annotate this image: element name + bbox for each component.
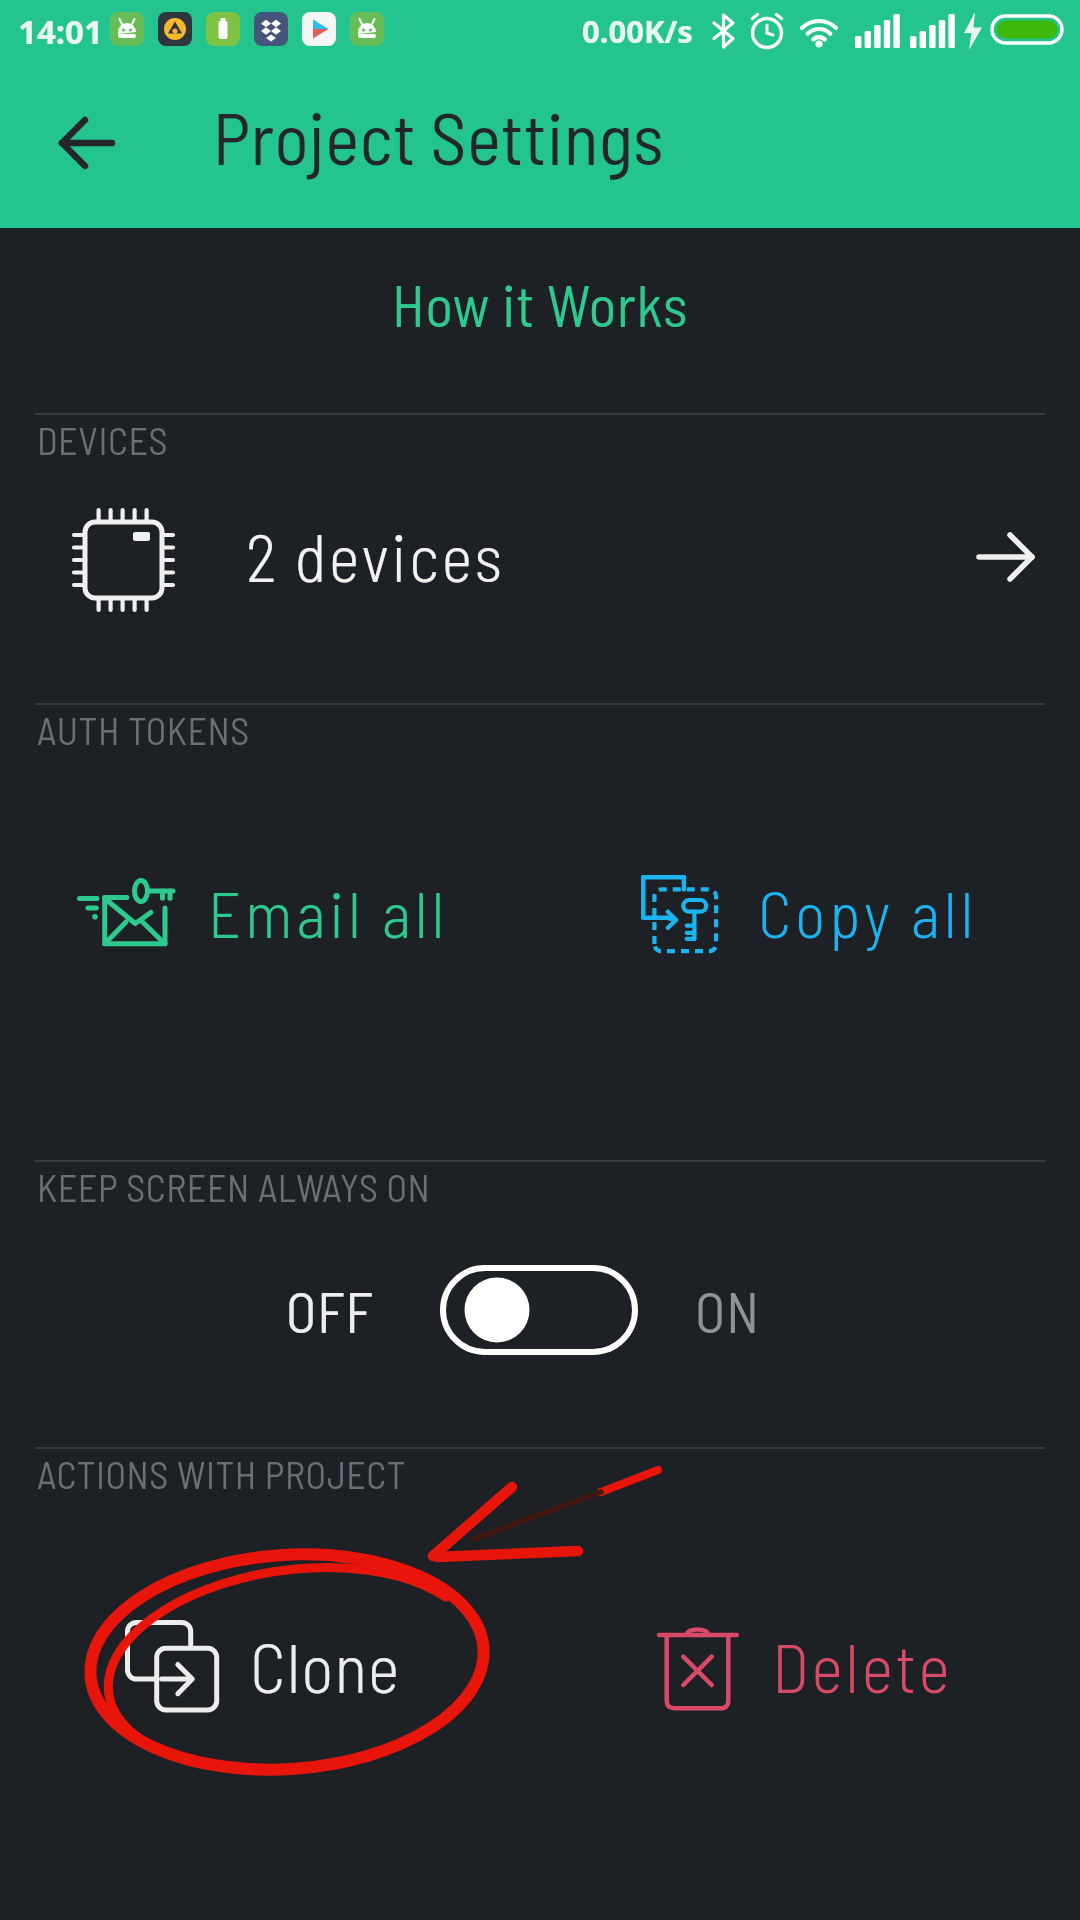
staticText: ACTIONS WITH PROJECT xyxy=(37,1451,406,1493)
staticText: Email all xyxy=(208,874,449,951)
button[interactable] xyxy=(300,265,780,343)
button[interactable]: Email all xyxy=(55,845,475,980)
staticText: DEVICES xyxy=(37,417,169,459)
staticText: Delete xyxy=(772,1625,953,1707)
staticText: OFF xyxy=(286,1277,374,1344)
staticText: How it Works xyxy=(392,269,689,339)
button[interactable] xyxy=(40,98,140,188)
button[interactable]: Delete xyxy=(638,1598,988,1733)
button[interactable]: Clone xyxy=(108,1598,438,1733)
staticText: 0.00K/s xyxy=(582,10,693,52)
staticText: 14:01 xyxy=(18,9,103,54)
staticText: Copy all xyxy=(758,874,978,951)
button[interactable]: OFF xyxy=(270,1248,790,1373)
staticText: AUTH TOKENS xyxy=(37,707,250,749)
button[interactable]: 2 devices xyxy=(30,480,1050,630)
staticText: 2 devices xyxy=(246,516,505,595)
staticText: ON xyxy=(695,1277,760,1344)
staticText: Clone xyxy=(250,1625,401,1707)
staticText: KEEP SCREEN ALWAYS ON xyxy=(37,1164,431,1206)
button[interactable]: Copy all xyxy=(615,845,1015,980)
staticText: Project Settings xyxy=(213,93,664,179)
